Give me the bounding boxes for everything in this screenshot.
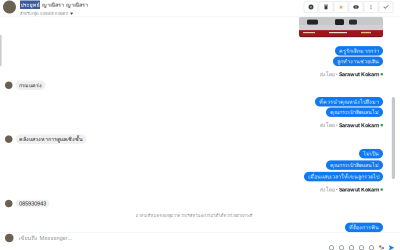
button[interactable]: Reaction	[378, 244, 385, 250]
staticText: คลังแสวงหาการดูแลเชิงชั้น	[19, 135, 83, 143]
button[interactable]: Delete	[319, 1, 333, 12]
button[interactable]: คุณกระเป๋าติดแลนไม่	[326, 107, 383, 117]
staticText: ส่งโดย	[320, 70, 335, 79]
button[interactable]: สำหรับกลุ่ม Session Kokarn	[20, 10, 73, 17]
button[interactable]: Photo attachment	[299, 17, 383, 37]
staticText: คุณกระเป๋าติดแลนไม่	[330, 161, 379, 169]
button[interactable]: Send	[388, 244, 395, 250]
button[interactable]: Profile photo	[3, 0, 16, 13]
staticText: ไม่เป็น	[363, 149, 379, 158]
button[interactable]: ที่ควรนำคุณหนังไปถึงมา	[315, 97, 383, 106]
button[interactable]: เมื่อนแสบเวลาให้เขนลูกรวดไป	[304, 172, 383, 181]
button[interactable]: ครูรักเด็กมากกว่า	[335, 46, 383, 56]
button[interactable]: Emoji	[338, 244, 345, 250]
staticText: เขียนถึง Messenger…	[18, 234, 72, 242]
button[interactable]: Mark as done	[379, 1, 393, 12]
staticText: สำหรับกลุ่ม Session Kokarn	[20, 10, 68, 17]
staticText: 085930943	[19, 200, 46, 207]
button[interactable]: Mark unread	[349, 1, 363, 12]
staticText: Sarawut Kokarn	[339, 71, 379, 78]
staticText: กรมแคร่ง	[19, 81, 42, 89]
staticText: ครูรักเด็กมากกว่า	[339, 47, 379, 55]
button[interactable]: Star	[334, 1, 348, 12]
staticText: ส่งโดย	[320, 185, 335, 194]
staticText: ที่ควรนำคุณหนังไปถึงมา	[319, 97, 379, 106]
staticText: ญาณิสรา ญาณิสรา	[42, 0, 88, 9]
staticText: ที่ต้องการฟัน	[349, 223, 379, 232]
staticText: เมื่อนแสบเวลาให้เขนลูกรวดไป	[308, 172, 379, 181]
button[interactable]: Add files	[328, 244, 335, 250]
staticText: ลูกทำงานช่วยเดิน	[337, 57, 379, 66]
button[interactable]: Details	[304, 1, 318, 12]
button[interactable]: ลูกทำงานช่วยเดิน	[333, 57, 383, 66]
button[interactable]: More options	[364, 1, 378, 12]
button[interactable]: GIF	[348, 244, 355, 250]
button[interactable]: Sticker	[368, 244, 375, 250]
button[interactable]: Photo	[358, 244, 365, 250]
staticText: คุณกระเป๋าติดแลนไม่	[330, 108, 379, 116]
button[interactable]: ไม่เป็น	[359, 149, 383, 158]
button[interactable]: Your profile photo	[5, 234, 13, 242]
staticText: Sarawut Kokarn	[339, 186, 379, 193]
staticText: ประยุทธ์	[20, 0, 39, 9]
button[interactable]: คลังแสวงหาการดูแลเชิงชั้น	[15, 134, 86, 144]
staticText: มาสามที่หมดของกลุ่มว่าควรบริษัทในอะไรไม่…	[135, 212, 252, 219]
staticText: ส่งโดย	[320, 121, 335, 129]
button[interactable]: 085930943	[15, 200, 49, 207]
button[interactable]: กรมแคร่ง	[15, 80, 45, 90]
button[interactable]: ประยุทธ์	[20, 0, 88, 9]
button[interactable]: คุณกระเป๋าติดแลนไม่	[326, 160, 383, 170]
button[interactable]: ที่ต้องการฟัน	[345, 223, 383, 232]
button[interactable]: เขียนถึง Messenger…	[18, 234, 395, 242]
staticText: Sarawut Kokarn	[339, 122, 379, 128]
